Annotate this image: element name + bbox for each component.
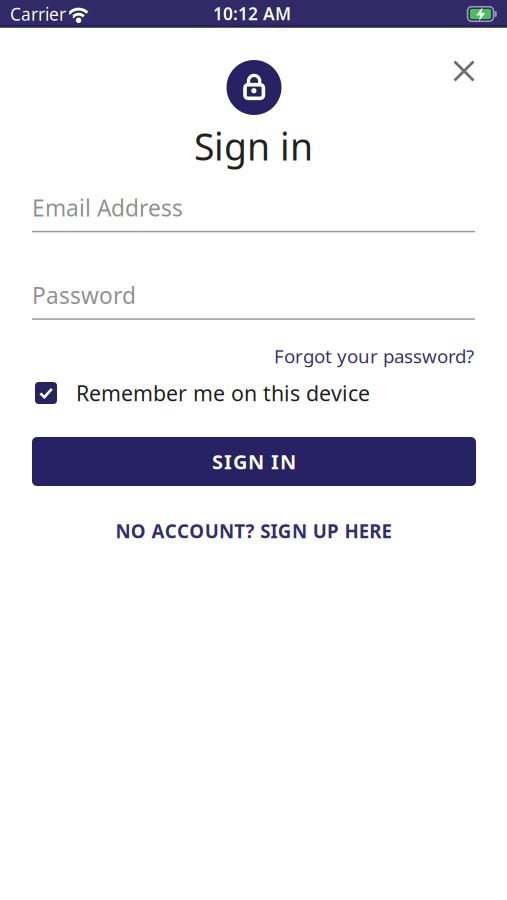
staticText: Forgot your password? bbox=[274, 344, 474, 368]
staticText: Sign in bbox=[194, 121, 313, 171]
staticText: 10:12 AM bbox=[213, 2, 291, 25]
staticText: Carrier bbox=[10, 2, 66, 25]
button[interactable]: Forgot your password? bbox=[274, 344, 474, 368]
staticText: Email Address bbox=[32, 193, 183, 223]
staticText: Remember me on this device bbox=[76, 379, 370, 407]
button[interactable]: SIGN IN bbox=[32, 437, 476, 486]
staticText: SIGN IN bbox=[212, 448, 296, 475]
button[interactable] bbox=[442, 49, 486, 93]
staticText: NO ACCOUNT? SIGN UP HERE bbox=[116, 519, 391, 543]
staticText: Password bbox=[32, 280, 136, 310]
button[interactable]: Remember me on this device bbox=[0, 379, 507, 407]
button[interactable]: NO ACCOUNT? SIGN UP HERE bbox=[116, 519, 391, 543]
button[interactable]: Password bbox=[32, 280, 475, 316]
button[interactable]: Email Address bbox=[32, 192, 475, 228]
